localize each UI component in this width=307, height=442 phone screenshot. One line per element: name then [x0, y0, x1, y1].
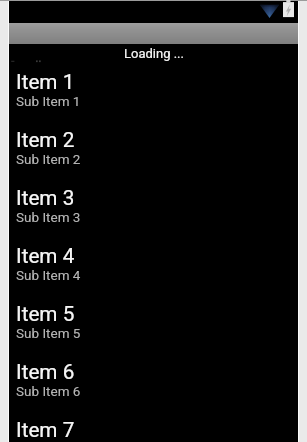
staticText: Item 4	[16, 244, 75, 268]
button[interactable]: Item 5	[9, 302, 298, 360]
button[interactable]: Item 6	[9, 360, 298, 418]
staticText: Sub Item 3	[16, 209, 81, 225]
staticText: Item 3	[16, 186, 75, 210]
staticText: Item 1	[16, 70, 75, 94]
button[interactable]: Item 4	[9, 244, 298, 302]
button[interactable]: Item 3	[9, 186, 298, 244]
button[interactable]: Item 2	[9, 128, 298, 186]
staticText: Item 5	[16, 302, 75, 326]
button[interactable]	[9, 23, 298, 44]
button[interactable]: Item 7	[9, 418, 298, 442]
staticText: Sub Item 2	[16, 151, 81, 167]
staticText: Loading ...	[124, 46, 184, 61]
staticText: Sub Item 6	[16, 383, 81, 399]
staticText: Item 2	[16, 128, 75, 152]
staticText: Item 6	[16, 360, 75, 384]
button[interactable]: Download in progress	[260, 4, 279, 18]
staticText: Item 7	[16, 418, 75, 442]
button[interactable]: Battery charging	[283, 0, 294, 19]
staticText: Sub Item 1	[16, 93, 81, 109]
button[interactable]: Item 1	[9, 70, 298, 128]
staticText: Sub Item 4	[16, 267, 81, 283]
staticText: Sub Item 5	[16, 325, 81, 341]
